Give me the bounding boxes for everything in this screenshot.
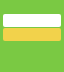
button[interactable] (3, 14, 61, 27)
button[interactable] (3, 28, 61, 41)
